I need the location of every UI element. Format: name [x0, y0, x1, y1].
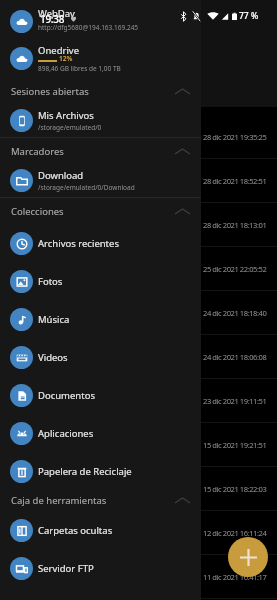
- staticText: 28 dic 2021 18:52:51: [203, 176, 267, 186]
- button[interactable]: Sesiones abiertas: [0, 78, 201, 104]
- button[interactable]: Add: [228, 537, 268, 577]
- staticText: Mis Archivos: [38, 109, 94, 122]
- button[interactable]: Onedrive: [0, 42, 201, 78]
- staticText: Papelera de Reciclaje: [38, 465, 132, 478]
- staticText: 898,46 GB libres de 1,00 TB: [38, 64, 121, 73]
- button[interactable]: Marcadores: [0, 138, 201, 164]
- staticText: http://dfg5680@194.163.169.245: [38, 23, 139, 32]
- staticText: 12%: [59, 54, 73, 63]
- staticText: 25 dic 2021 22:05:52: [203, 264, 267, 274]
- button[interactable]: Documentos: [0, 376, 201, 414]
- button[interactable]: Carpetas ocultas: [0, 511, 201, 549]
- button[interactable]: 11 dic 2021 16:41:17: [0, 555, 277, 599]
- button[interactable]: 15 dic 2021 19:21:51: [0, 423, 277, 467]
- staticText: 28 dic 2021 18:13:01: [203, 220, 267, 230]
- staticText: Documentos: [38, 389, 95, 402]
- staticText: Caja de herramientas: [11, 494, 107, 507]
- button[interactable]: 15 dic 2021 18:22:03: [0, 467, 277, 511]
- button[interactable]: WebDav: [0, 3, 201, 39]
- staticText: 15 dic 2021 18:22:03: [203, 484, 267, 494]
- staticText: Aplicaciones: [38, 427, 94, 440]
- button[interactable]: Download: [0, 164, 201, 197]
- staticText: 28 dic 2021 19:35:25: [203, 132, 267, 142]
- staticText: Videos: [38, 351, 68, 364]
- button[interactable]: Mis Archivos: [0, 104, 201, 137]
- staticText: Fotos: [38, 275, 63, 288]
- staticText: 11 dic 2021 16:41:17: [203, 572, 267, 582]
- staticText: Onedrive: [38, 44, 80, 57]
- button[interactable]: 25 dic 2021 22:05:52: [0, 247, 277, 291]
- staticText: /storage/emulated/0/Download: [38, 183, 135, 192]
- button[interactable]: 24 dic 2021 18:06:08: [0, 335, 277, 379]
- staticText: Colecciones: [11, 205, 64, 218]
- button[interactable]: Servidor FTP: [0, 549, 201, 587]
- button[interactable]: Aplicaciones: [0, 414, 201, 452]
- button[interactable]: Videos: [0, 338, 201, 376]
- button[interactable]: 12 dic 2021 16:11:24: [0, 511, 277, 555]
- button[interactable]: 23 dic 2021 19:11:51: [0, 379, 277, 423]
- staticText: 23 dic 2021 19:11:51: [203, 396, 267, 406]
- staticText: Servidor FTP: [38, 562, 94, 575]
- staticText: 77 %: [239, 10, 259, 22]
- staticText: Sesiones abiertas: [11, 85, 89, 98]
- button[interactable]: Música: [0, 300, 201, 338]
- button[interactable]: Papelera de Reciclaje: [0, 452, 201, 490]
- button[interactable]: Colecciones: [0, 198, 201, 224]
- staticText: 19:38: [40, 12, 65, 26]
- staticText: 24 dic 2021 18:06:08: [203, 352, 267, 362]
- staticText: 15 dic 2021 19:21:51: [203, 440, 267, 450]
- staticText: Marcadores: [11, 145, 64, 158]
- button[interactable]: 24 dic 2021 18:18:40: [0, 291, 277, 335]
- button[interactable]: Caja de herramientas: [0, 490, 201, 511]
- staticText: Carpetas ocultas: [38, 524, 113, 537]
- button[interactable]: 28 dic 2021 19:35:25: [0, 115, 277, 159]
- button[interactable]: Archivos recientes: [0, 224, 201, 262]
- staticText: 12 dic 2021 16:11:24: [203, 528, 267, 538]
- staticText: WebDav: [38, 7, 75, 20]
- staticText: 24 dic 2021 18:18:40: [203, 308, 267, 318]
- button[interactable]: 28 dic 2021 18:52:51: [0, 159, 277, 203]
- staticText: Archivos recientes: [38, 237, 119, 250]
- staticText: Download: [38, 169, 84, 182]
- button[interactable]: 28 dic 2021 18:13:01: [0, 203, 277, 247]
- button[interactable]: Fotos: [0, 262, 201, 300]
- staticText: Música: [38, 313, 70, 326]
- staticText: /storage/emulated/0: [38, 123, 102, 132]
